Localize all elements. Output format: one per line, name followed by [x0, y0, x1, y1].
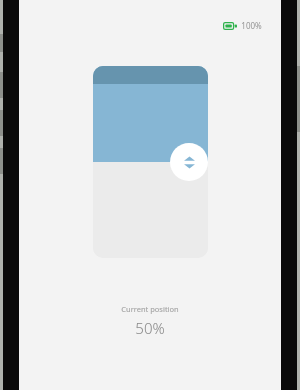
staticText: 100%: [241, 20, 262, 31]
button[interactable]: [93, 66, 208, 258]
button[interactable]: Drag to change position: [170, 143, 208, 181]
staticText: 50%: [135, 318, 165, 338]
staticText: Current position: [121, 304, 179, 314]
